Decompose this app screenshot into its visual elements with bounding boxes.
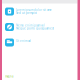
staticText: Lorem ipsum dolor sit ame bbox=[16, 8, 52, 12]
button[interactable]: Lorem ipsum dolor sit ame bbox=[5, 7, 74, 15]
button[interactable]: Ut enim ad bbox=[5, 38, 74, 46]
staticText: magna bbox=[5, 75, 13, 78]
staticText: Neque porro quisquam est bbox=[16, 27, 54, 30]
staticText: Sed ut perspici bbox=[16, 11, 37, 15]
button[interactable]: Nemo enim ipsam vol bbox=[5, 23, 74, 31]
staticText: Ut enim ad bbox=[16, 39, 31, 43]
staticText: Nemo enim ipsam vol bbox=[16, 24, 45, 27]
